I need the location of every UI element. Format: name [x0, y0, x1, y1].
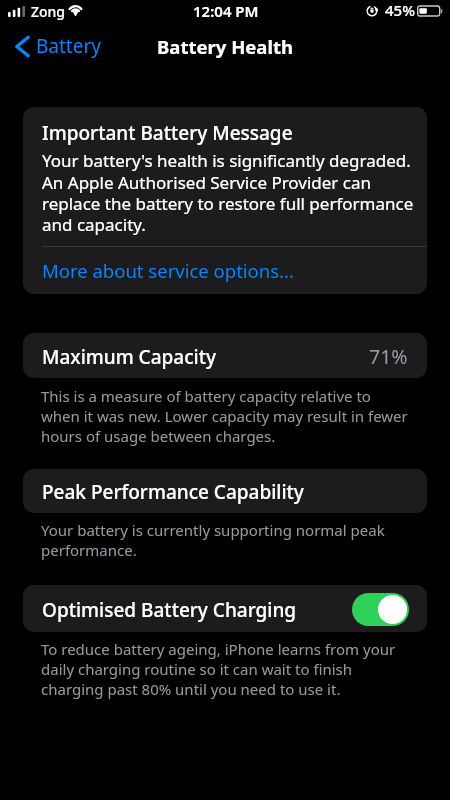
staticText: Zong	[31, 2, 66, 21]
other: Optimised Battery Charging, on	[352, 593, 409, 626]
staticText: This is a measure of battery capacity re…	[41, 386, 412, 446]
staticText: Battery	[36, 33, 101, 59]
staticText: 71%	[369, 343, 408, 370]
staticText: More about service options...	[42, 258, 294, 283]
button[interactable]: Peak Performance Capability	[23, 469, 427, 513]
button[interactable]: Battery	[0, 27, 111, 65]
staticText: To reduce battery ageing, iPhone learns …	[41, 639, 412, 699]
staticText: Maximum Capacity	[42, 344, 216, 370]
staticText: Battery Health	[157, 34, 293, 59]
staticText: 12:04 PM	[193, 1, 259, 21]
staticText: Your battery is currently supporting nor…	[41, 520, 412, 560]
staticText: 45%	[385, 0, 415, 20]
staticText: Optimised Battery Charging	[42, 597, 297, 623]
button[interactable]: Optimised Battery Charging	[23, 585, 427, 632]
staticText: Important Battery Message	[42, 120, 293, 146]
button[interactable]: More about service options...	[23, 247, 427, 294]
staticText: Peak Performance Capability	[42, 479, 304, 505]
button[interactable]: Maximum Capacity	[23, 333, 427, 378]
staticText: Your battery's health is significantly d…	[42, 149, 415, 236]
